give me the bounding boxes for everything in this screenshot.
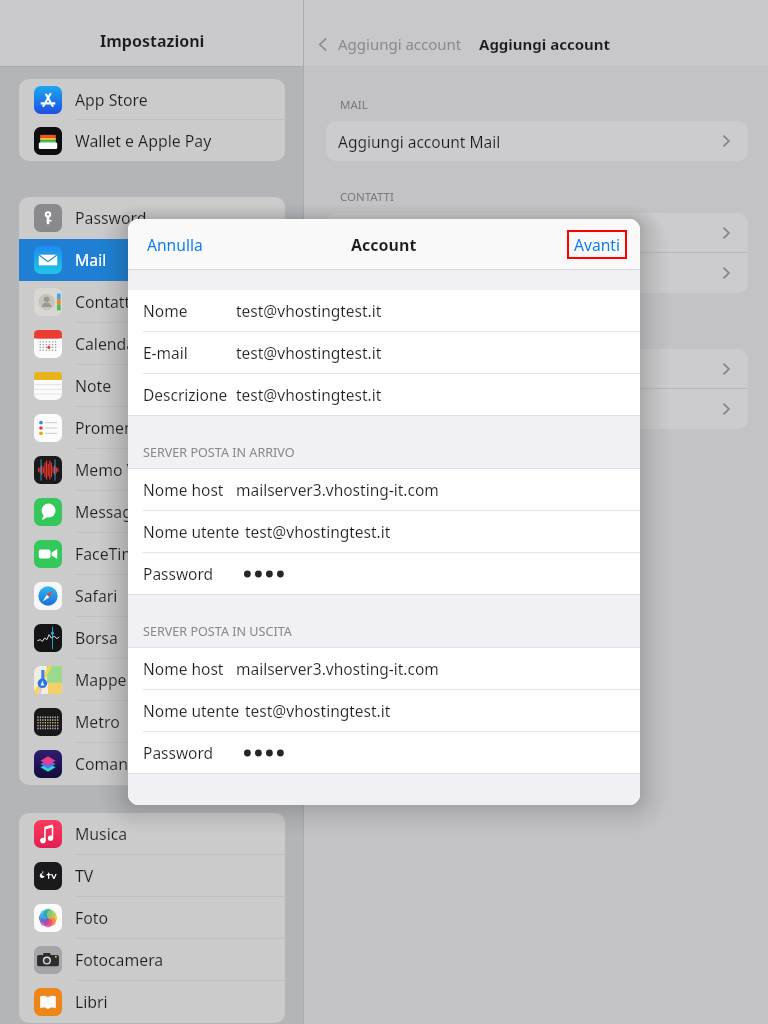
staticText: test@vhostingtest.it xyxy=(245,521,391,542)
staticText: SERVER POSTA IN USCITA xyxy=(143,623,292,640)
staticText: FaceTime xyxy=(75,543,146,565)
staticText: Aggiungi account Mail xyxy=(338,131,501,152)
staticText: Foto xyxy=(75,907,109,929)
button[interactable]: Metro xyxy=(19,701,285,743)
staticText: Libri xyxy=(75,991,108,1013)
staticText: TV xyxy=(75,865,94,887)
staticText: Mail xyxy=(75,249,107,271)
button[interactable]: Contatti xyxy=(19,281,285,323)
button[interactable]: Password xyxy=(128,553,640,594)
staticText: test@vhostingtest.it xyxy=(236,342,382,363)
button[interactable]: Foto xyxy=(19,897,285,939)
button[interactable]: Memo Vocali xyxy=(19,449,285,491)
button[interactable]: Messaggi xyxy=(19,491,285,533)
staticText: Account xyxy=(351,234,417,256)
staticText: CONTATTI xyxy=(340,189,394,205)
button[interactable]: Musica xyxy=(19,813,285,855)
staticText: Aggiungi account xyxy=(479,34,611,54)
staticText: E-mail xyxy=(143,342,188,363)
button[interactable]: Password xyxy=(19,197,285,239)
button[interactable]: Aggiungi account Calendario xyxy=(326,349,748,389)
button[interactable]: Aggiungi account CardDAV xyxy=(326,253,748,293)
button[interactable]: Aggiungi account CalDAV xyxy=(326,389,748,429)
staticText: test@vhostingtest.it xyxy=(236,300,382,321)
staticText: Safari xyxy=(75,585,118,607)
button[interactable]: Annulla xyxy=(143,230,207,259)
button[interactable]: FaceTime xyxy=(19,533,285,575)
button[interactable]: Calendario xyxy=(19,323,285,365)
button[interactable]: Note xyxy=(19,365,285,407)
staticText: Promemoria xyxy=(75,417,168,439)
staticText: Fotocamera xyxy=(75,949,164,971)
staticText: Aggiungi account xyxy=(338,34,462,54)
button[interactable]: App Store xyxy=(19,79,285,120)
staticText: mailserver3.vhosting-it.com xyxy=(236,658,439,679)
button[interactable]: Descrizione xyxy=(128,374,640,415)
staticText: Nome host xyxy=(143,658,224,679)
staticText: Avanti xyxy=(574,234,620,255)
staticText: Nome utente xyxy=(143,521,240,542)
button[interactable]: E-mail xyxy=(128,332,640,373)
button[interactable]: Nome xyxy=(128,290,640,331)
staticText: test@vhostingtest.it xyxy=(245,700,391,721)
button[interactable]: Safari xyxy=(19,575,285,617)
staticText: Password xyxy=(143,563,214,584)
button[interactable]: TV xyxy=(19,855,285,897)
staticText: Annulla xyxy=(147,234,203,255)
button[interactable]: Indietro: Aggiungi account xyxy=(313,34,464,54)
staticText: Metro xyxy=(75,711,120,733)
button[interactable]: Promemoria xyxy=(19,407,285,449)
staticText: Impostazioni xyxy=(100,30,205,52)
button[interactable]: Comandi xyxy=(19,743,285,785)
button[interactable]: Mail xyxy=(19,239,285,281)
staticText: Contatti xyxy=(75,291,135,313)
staticText: Messaggi xyxy=(75,501,146,523)
button[interactable]: Password xyxy=(128,732,640,773)
staticText: Password xyxy=(75,207,147,229)
staticText: Nome xyxy=(143,300,188,321)
staticText: Comandi xyxy=(75,753,142,775)
button[interactable]: Avanti xyxy=(567,230,627,259)
button[interactable]: Aggiungi account Mail xyxy=(326,121,748,161)
staticText: mailserver3.vhosting-it.com xyxy=(236,479,439,500)
button[interactable]: Aggiungi account Contatti xyxy=(326,213,748,253)
staticText: Calendario xyxy=(75,333,156,355)
staticText: Nome utente xyxy=(143,700,240,721)
button[interactable]: Fotocamera xyxy=(19,939,285,981)
button[interactable]: Nome utente xyxy=(128,690,640,731)
staticText: Mappe xyxy=(75,669,127,691)
button[interactable]: Borsa xyxy=(19,617,285,659)
staticText: Descrizione xyxy=(143,384,228,405)
staticText: App Store xyxy=(75,89,148,111)
button[interactable]: Mappe xyxy=(19,659,285,701)
button[interactable]: Wallet e Apple Pay xyxy=(19,120,285,161)
staticText: SERVER POSTA IN ARRIVO xyxy=(143,444,295,461)
button[interactable]: Nome host xyxy=(128,469,640,510)
staticText: Note xyxy=(75,375,112,397)
staticText: Musica xyxy=(75,823,128,845)
staticText: MAIL xyxy=(340,97,368,113)
button[interactable]: Nome utente xyxy=(128,511,640,552)
staticText: test@vhostingtest.it xyxy=(236,384,382,405)
staticText: Borsa xyxy=(75,627,118,649)
button[interactable]: Nome host xyxy=(128,648,640,689)
button[interactable]: Libri xyxy=(19,981,285,1023)
staticText: Wallet e Apple Pay xyxy=(75,130,212,152)
staticText: Nome host xyxy=(143,479,224,500)
staticText: Memo Vocali xyxy=(75,459,170,481)
staticText: Password xyxy=(143,742,214,763)
